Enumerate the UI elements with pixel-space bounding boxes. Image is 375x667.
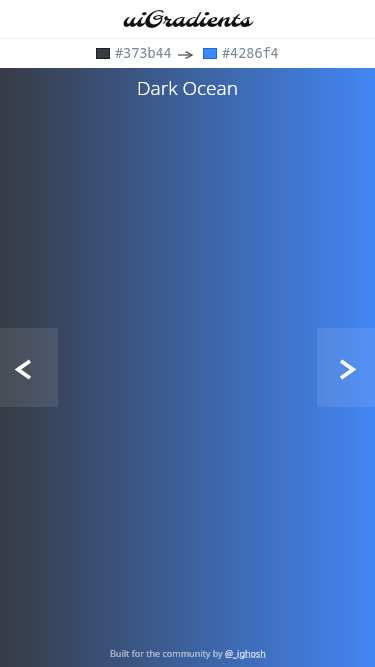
staticText: Built for the community by: [110, 647, 225, 659]
button[interactable]: Next gradient: [317, 328, 375, 407]
button[interactable]: Previous gradient: [0, 328, 58, 407]
staticText: #4286f4: [222, 44, 279, 62]
button[interactable]: #4286f4: [203, 44, 279, 62]
button[interactable]: #373b44: [96, 44, 172, 62]
staticText: #373b44: [115, 44, 172, 62]
button[interactable]: @_ighosh: [225, 647, 266, 659]
staticText: uiGradients: [123, 6, 252, 35]
staticText: Dark Ocean: [137, 75, 239, 101]
